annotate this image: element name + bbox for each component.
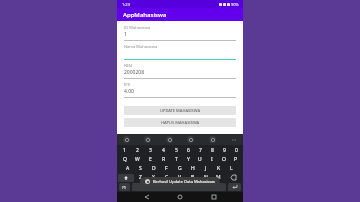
staticText: R (162, 156, 166, 163)
button[interactable]: R (157, 155, 170, 164)
button[interactable]: D (147, 164, 160, 173)
staticText: ID Mahasiswa (124, 25, 151, 30)
staticText: B (191, 174, 195, 181)
button[interactable]: X (147, 173, 160, 182)
staticText: Z (139, 174, 142, 181)
button[interactable]: O (218, 155, 230, 164)
button[interactable]: ID Mahasiswa (124, 25, 236, 44)
staticText: P (234, 156, 238, 163)
button[interactable]: L (225, 164, 238, 173)
button[interactable]: Enter (228, 183, 241, 191)
staticText: Nama Mahasiswa (124, 44, 158, 49)
button[interactable]: W (131, 155, 144, 164)
button[interactable]: 2 (131, 146, 144, 155)
staticText: Berhasil Update Data Mahasiswa (153, 179, 215, 184)
staticText: C (165, 174, 169, 181)
button[interactable]: E (144, 155, 157, 164)
button[interactable]: Settings (166, 136, 173, 143)
button[interactable]: A (122, 164, 134, 173)
staticText: AppMahasiswa (123, 11, 167, 19)
staticText: I (211, 156, 213, 163)
button[interactable]: ?1 (119, 183, 130, 191)
button[interactable]: More options (230, 136, 237, 143)
staticText: 8 (211, 147, 214, 154)
button[interactable]: I (206, 155, 218, 164)
button[interactable]: Nama Mahasiswa (124, 44, 236, 63)
staticText: UPDATE MAHASISWA (160, 108, 201, 113)
staticText: A (126, 165, 130, 172)
button[interactable]: K (212, 164, 225, 173)
button[interactable]: 6 (182, 146, 194, 155)
staticText: T (175, 156, 178, 163)
button[interactable]: Theme (209, 136, 216, 143)
staticText: E (149, 156, 152, 163)
staticText: 6 (187, 147, 190, 154)
staticText: X (152, 174, 155, 181)
button[interactable]: V (173, 173, 186, 182)
button[interactable]: G (173, 164, 186, 173)
staticText: N (204, 174, 208, 181)
button[interactable]: S (134, 164, 147, 173)
staticText: 3 (149, 147, 152, 154)
staticText: 90% (231, 2, 239, 7)
button[interactable]: Emoji (123, 136, 130, 143)
button[interactable]: Clipboard (144, 136, 151, 143)
button[interactable]: Space (132, 183, 226, 191)
staticText: L (230, 165, 233, 172)
button[interactable]: B (186, 173, 199, 182)
button[interactable]: 7 (194, 146, 206, 155)
staticText: D (152, 165, 156, 172)
button[interactable]: UPDATE MAHASISWA (124, 106, 236, 115)
staticText: 4 (162, 147, 165, 154)
button[interactable]: Shift (118, 174, 134, 182)
button[interactable]: 3 (144, 146, 157, 155)
button[interactable]: N (199, 173, 212, 182)
button[interactable]: P (230, 155, 242, 164)
staticText: 2 (136, 147, 139, 154)
staticText: J (205, 165, 207, 172)
button[interactable]: Home (176, 193, 184, 201)
button[interactable]: 1 (118, 146, 131, 155)
button[interactable]: Sticker (187, 136, 194, 143)
button[interactable]: HAPUS MAHASISWA (124, 118, 236, 127)
staticText: S (139, 165, 142, 172)
staticText: 1 (124, 31, 127, 38)
button[interactable]: 8 (206, 146, 218, 155)
button[interactable]: J (199, 164, 212, 173)
staticText: 1:23 (122, 2, 130, 7)
staticText: V (178, 174, 182, 181)
staticText: O (222, 156, 226, 163)
button[interactable]: 9 (218, 146, 230, 155)
staticText: W (135, 156, 140, 163)
button[interactable]: Back (143, 193, 151, 201)
staticText: HAPUS MAHASISWA (161, 120, 200, 125)
staticText: H (191, 165, 195, 172)
button[interactable]: Y (182, 155, 194, 164)
staticText: 5 (175, 147, 178, 154)
staticText: 4.00 (124, 88, 134, 95)
staticText: 9 (223, 147, 226, 154)
staticText: ?1 (122, 185, 127, 190)
button[interactable]: IPK (124, 82, 236, 101)
staticText: NIM (124, 63, 133, 68)
button[interactable]: AppMahasiswa (117, 8, 243, 21)
button[interactable]: Backspace (225, 173, 242, 182)
staticText: 2000208 (124, 69, 145, 76)
button[interactable]: C (160, 173, 173, 182)
staticText: 1 (123, 147, 126, 154)
button[interactable]: H (186, 164, 199, 173)
staticText: G (178, 165, 182, 172)
button[interactable]: 5 (170, 146, 182, 155)
button[interactable]: Recents (210, 193, 218, 201)
staticText: 7 (199, 147, 202, 154)
button[interactable]: NIM (124, 63, 236, 82)
button[interactable]: F (160, 164, 173, 173)
button[interactable]: U (194, 155, 206, 164)
button[interactable]: 0 (230, 146, 242, 155)
button[interactable]: 4 (157, 146, 170, 155)
staticText: F (165, 165, 168, 172)
button[interactable]: Q (118, 155, 131, 164)
button[interactable]: M (212, 173, 225, 182)
button[interactable]: Z (134, 173, 147, 182)
button[interactable]: T (170, 155, 182, 164)
